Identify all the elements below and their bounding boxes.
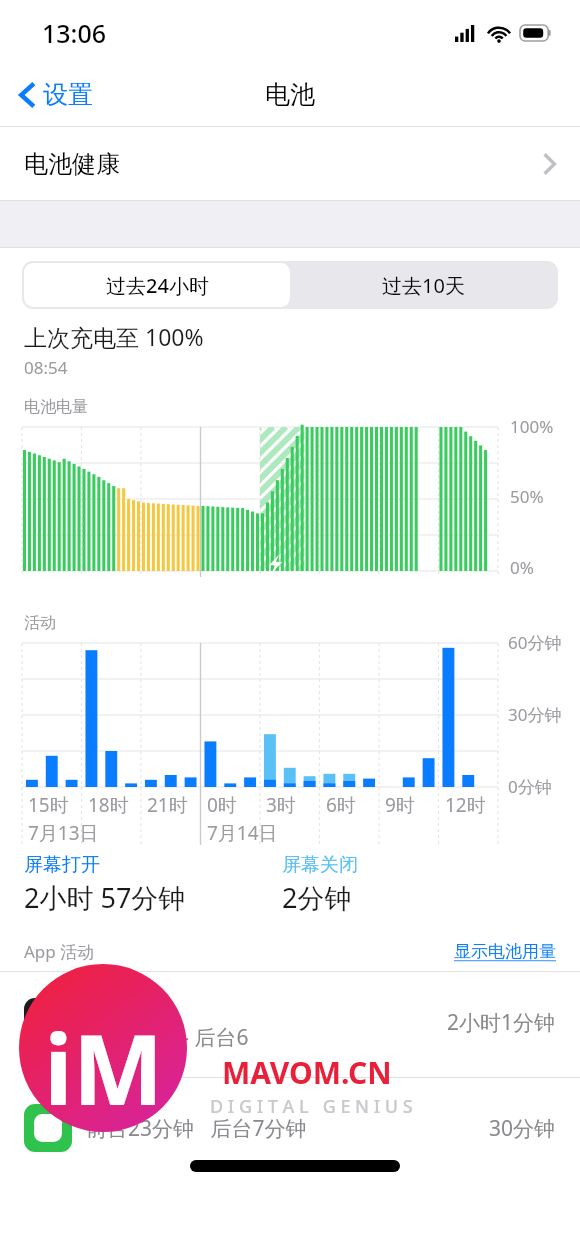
staticText: 电池电量 xyxy=(24,397,88,417)
staticText: 30分钟 xyxy=(508,703,562,726)
staticText: 12时 xyxy=(445,792,486,818)
button[interactable]: 过去24小时 xyxy=(24,263,290,307)
staticText: 18时 xyxy=(88,792,129,818)
staticText: 0% xyxy=(510,556,534,579)
staticText: 2小时 57分钟 xyxy=(24,879,186,916)
staticText: 抖 xyxy=(86,992,106,1017)
staticText: 9时 xyxy=(385,792,415,818)
staticText: 15时 xyxy=(28,792,69,818)
button[interactable]: 抖 xyxy=(0,972,580,1072)
staticText: 100% xyxy=(510,415,554,438)
staticText: 过去24小时 xyxy=(106,272,209,299)
staticText: D I G I T A L G E N I U S xyxy=(210,1094,413,1119)
staticText: 30分钟 xyxy=(489,1114,556,1143)
staticText: 21时 xyxy=(147,792,188,818)
staticText: 过去10天 xyxy=(382,272,465,299)
button[interactable]: 设置 xyxy=(14,73,99,116)
button[interactable]: 前台23分钟 后台7分钟 xyxy=(0,1078,580,1178)
staticText: 13:06 xyxy=(42,16,107,50)
button[interactable]: 电池健康 xyxy=(0,127,580,200)
staticText: iM xyxy=(44,1002,164,1133)
staticText: 3时 xyxy=(266,792,296,818)
staticText: 活动 xyxy=(24,613,56,633)
staticText: 50% xyxy=(510,485,544,508)
staticText: 60分钟 xyxy=(508,631,562,654)
staticText: 设置 xyxy=(43,79,93,110)
staticText: 屏幕打开 xyxy=(24,853,100,877)
staticText: 前台23分钟 后台7分钟 xyxy=(86,1114,307,1143)
staticText: 时55分钟 – 后台6 xyxy=(86,1023,249,1052)
staticText: 6时 xyxy=(326,792,356,818)
staticText: 屏幕关闭 xyxy=(282,853,358,877)
staticText: 7月13日 xyxy=(28,820,99,846)
staticText: 0分钟 xyxy=(508,775,552,798)
button[interactable]: 过去10天 xyxy=(290,263,556,307)
staticText: 2分钟 xyxy=(282,879,352,916)
button[interactable]: 显示电池用量 xyxy=(454,941,556,962)
staticText: 08:54 xyxy=(24,356,68,379)
staticText: 上次充电至 100% xyxy=(24,321,204,352)
staticText: MAVOM.CN xyxy=(222,1052,392,1093)
staticText: 电池 xyxy=(265,79,315,110)
staticText: 0时 xyxy=(207,792,237,818)
staticText: App 活动 xyxy=(24,940,95,963)
staticText: 显示电池用量 xyxy=(454,941,556,962)
staticText: 2小时1分钟 xyxy=(447,1008,556,1037)
staticText: 电池健康 xyxy=(24,149,120,179)
staticText: 7月14日 xyxy=(207,820,278,846)
